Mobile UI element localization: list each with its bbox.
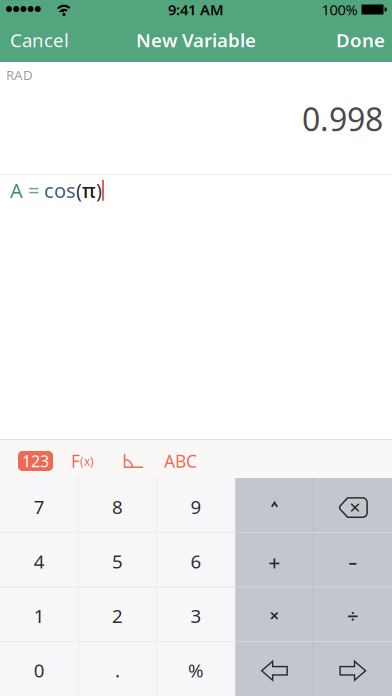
button[interactable]: 4	[0, 532, 78, 587]
button[interactable]: Move cursor left	[235, 641, 314, 696]
staticText: 0.998	[302, 97, 383, 140]
staticText: =	[28, 177, 44, 204]
staticText: Done	[336, 28, 385, 52]
staticText: (	[76, 177, 82, 204]
staticText: A	[10, 177, 28, 204]
button[interactable]: 5	[78, 532, 157, 587]
button[interactable]: %	[157, 641, 235, 696]
button[interactable]: Divide	[314, 587, 392, 641]
staticText: .	[115, 658, 120, 683]
staticText: 9:41 AM	[168, 0, 224, 19]
staticText: 9	[190, 494, 201, 519]
staticText: 5	[112, 549, 123, 574]
staticText: New Variable	[136, 28, 256, 52]
button[interactable]: Multiply	[235, 587, 314, 641]
staticText: (x)	[80, 453, 94, 469]
staticText: 6	[190, 549, 201, 574]
staticText: 7	[34, 494, 45, 519]
staticText: cos	[44, 177, 76, 204]
staticText: 123	[22, 450, 49, 472]
staticText: %	[188, 658, 204, 683]
button[interactable]: 123	[18, 451, 53, 471]
staticText: 1	[34, 603, 45, 628]
button[interactable]: 3	[157, 587, 235, 641]
staticText: 4	[34, 549, 45, 574]
button[interactable]: 6	[157, 532, 235, 587]
staticText: RAD	[6, 66, 33, 84]
staticText: 2	[112, 603, 123, 628]
staticText: Cancel	[10, 28, 69, 52]
button[interactable]: Done	[336, 28, 392, 52]
button[interactable]: Add	[235, 532, 314, 587]
button[interactable]: Delete	[314, 478, 392, 532]
staticText: )	[96, 177, 102, 204]
staticText: F	[71, 449, 80, 472]
staticText: 8	[112, 494, 123, 519]
button[interactable]: F	[53, 449, 94, 472]
button[interactable]: 1	[0, 587, 78, 641]
button[interactable]: Subtract	[314, 532, 392, 587]
staticText: ABC	[164, 449, 197, 472]
button[interactable]: .	[78, 641, 157, 696]
button[interactable]: 2	[78, 587, 157, 641]
button[interactable]: Graph	[94, 454, 143, 468]
button[interactable]: 8	[78, 478, 157, 532]
staticText: 100%	[321, 0, 357, 19]
button[interactable]: Cancel	[0, 28, 69, 52]
staticText: π	[82, 177, 96, 204]
button[interactable]: 9	[157, 478, 235, 532]
button[interactable]: 0	[0, 641, 78, 696]
button[interactable]: ABC	[143, 449, 197, 472]
button[interactable]: Power	[235, 478, 314, 532]
button[interactable]: Move cursor right	[314, 641, 392, 696]
staticText: 0	[34, 658, 45, 683]
button[interactable]: 7	[0, 478, 78, 532]
staticText: 3	[190, 603, 201, 628]
